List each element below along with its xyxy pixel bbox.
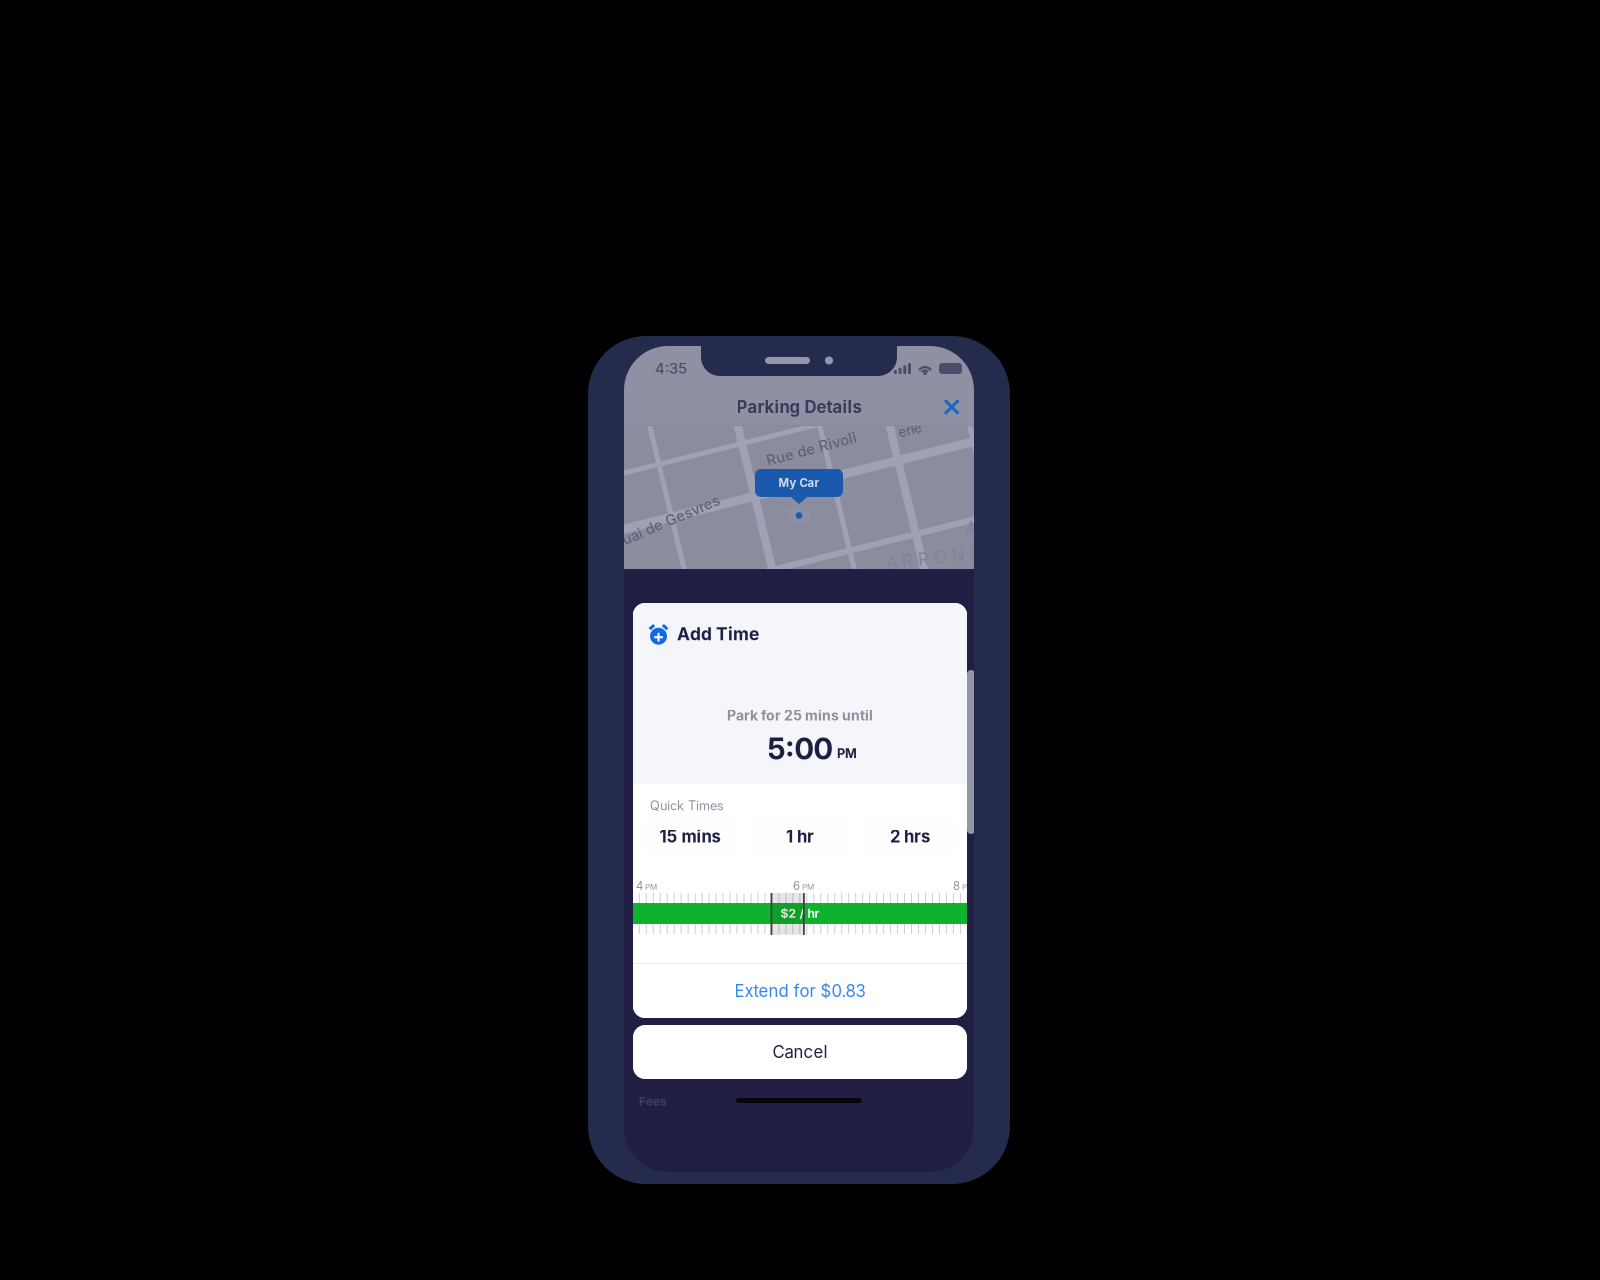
staticText: 6 (793, 879, 800, 893)
staticText: 2 hrs (890, 826, 930, 847)
staticText: 8 (953, 879, 960, 893)
staticText: Rue de Rivoli (765, 440, 858, 458)
staticText: My Car (778, 476, 819, 490)
staticText: erie (898, 422, 922, 438)
staticText: 1 hr (786, 826, 814, 847)
staticText: $2 / hr (780, 906, 819, 921)
staticText: 4 (965, 518, 976, 538)
staticText: PM (962, 882, 974, 892)
staticText: Parking Details (736, 397, 861, 417)
staticText: 15 mins (659, 826, 720, 847)
button[interactable]: Extend for $0.83 (633, 964, 967, 1018)
staticText: PM (645, 882, 657, 892)
staticText: Quai de Gesvres (608, 513, 724, 531)
staticText: Extend for $0.83 (734, 981, 865, 1001)
button[interactable]: 1 hr (752, 816, 848, 857)
staticText: 4 (636, 879, 643, 893)
staticText: PM (802, 882, 814, 892)
staticText: A R R O N D (886, 548, 982, 568)
button[interactable]: 15 mins (642, 816, 738, 857)
staticText: 5:00 (767, 731, 832, 766)
staticText: 4:35 (655, 360, 687, 377)
button[interactable]: 2 hrs (862, 816, 958, 857)
staticText: Fees (639, 1094, 667, 1108)
staticText: Quick Times (650, 798, 724, 813)
staticText: Cancel (772, 1042, 827, 1062)
button[interactable]: Close (934, 390, 969, 424)
button[interactable]: Cancel (633, 1025, 967, 1079)
staticText: Add Time (677, 623, 759, 644)
staticText: PM (837, 746, 857, 761)
staticText: Park for 25 mins until (727, 707, 873, 724)
